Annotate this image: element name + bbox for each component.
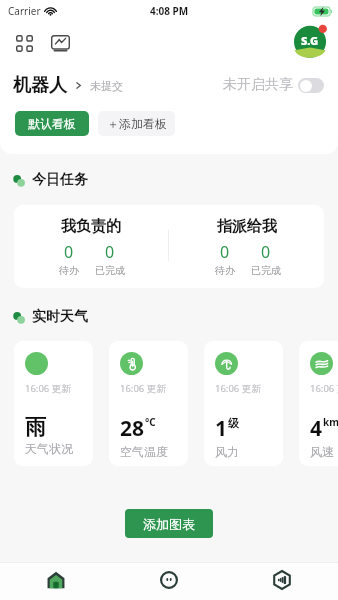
staticText: 4:08 PM [150, 4, 189, 18]
staticText: ＋添加看板 [107, 116, 167, 131]
staticText: 16:06 更新 [120, 382, 166, 395]
staticText: 实时天气 [32, 308, 88, 326]
staticText: 今日任务 [32, 171, 88, 189]
staticText: Carrier [8, 4, 41, 18]
staticText: 雨 [25, 414, 46, 440]
staticText: 0 [261, 241, 271, 263]
button[interactable]: 默认看板 [15, 111, 89, 136]
staticText: 风力 [215, 444, 239, 459]
staticText: 风速 [310, 444, 334, 459]
staticText: 16:06 更新 [25, 382, 71, 395]
button[interactable]: 16:06 更新 [109, 341, 188, 466]
staticText: 未开启共享 [223, 76, 293, 94]
staticText: 1 [215, 414, 228, 443]
staticText: 天气状况 [25, 441, 73, 456]
staticText: 28 [120, 414, 145, 443]
staticText: 级 [228, 416, 239, 430]
staticText: 机器人 [13, 74, 67, 97]
button[interactable]: 添加图表 [125, 509, 213, 538]
button[interactable]: 未开启共享 [223, 76, 324, 94]
staticText: 已完成 [251, 264, 281, 277]
staticText: 空气温度 [120, 444, 168, 459]
button[interactable]: Home [0, 563, 112, 600]
staticText: 待办 [59, 264, 79, 277]
button[interactable]: 16:06 更新 [299, 341, 338, 466]
button[interactable]: 16:06 更新 [14, 341, 93, 466]
staticText: 已完成 [95, 264, 125, 277]
staticText: 待办 [215, 264, 235, 277]
staticText: 默认看板 [28, 116, 76, 131]
staticText: 0 [105, 241, 115, 263]
button[interactable]: 机器人 [13, 74, 123, 97]
staticText: °C [145, 415, 156, 429]
button[interactable]: Devices [225, 563, 338, 600]
button[interactable]: Profile [294, 23, 330, 59]
button[interactable]: ＋添加看板 [98, 111, 175, 136]
staticText: 未提交 [90, 79, 123, 93]
button[interactable]: Dashboard [49, 32, 71, 54]
staticText: 添加图表 [143, 516, 195, 532]
button[interactable]: 16:06 更新 [204, 341, 283, 466]
staticText: 我负责的 [61, 217, 121, 236]
staticText: 4 [310, 414, 323, 443]
staticText: km/h [323, 415, 338, 429]
staticText: 0 [64, 241, 74, 263]
staticText: 16:06 更新 [310, 382, 338, 395]
button[interactable]: Messages [112, 563, 225, 600]
staticText: S.G [301, 33, 319, 48]
staticText: 指派给我 [217, 217, 277, 236]
button[interactable]: 我负责的 [14, 205, 324, 288]
staticText: 0 [220, 241, 230, 263]
staticText: 16:06 更新 [215, 382, 261, 395]
button[interactable]: Apps grid [13, 32, 35, 54]
